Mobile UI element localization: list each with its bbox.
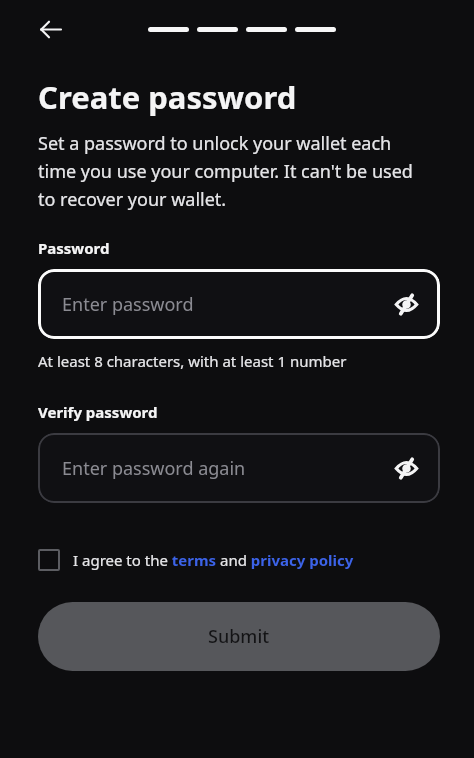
staticText: I agree to the terms and privacy policy (73, 550, 354, 570)
staticText: Verify password (38, 402, 158, 422)
button[interactable]: Show password (386, 284, 426, 324)
button[interactable]: Submit (38, 602, 440, 671)
button[interactable]: Show password (386, 448, 426, 488)
staticText: Submit (208, 624, 270, 649)
button[interactable]: Enter password (38, 269, 440, 339)
staticText: Enter password again (62, 456, 246, 481)
staticText: Set a password to unlock your wallet eac… (38, 131, 428, 211)
button[interactable]: Enter password again (38, 433, 440, 503)
staticText: Create password (38, 76, 297, 118)
staticText: Password (38, 238, 110, 258)
button[interactable]: Back (26, 5, 74, 53)
button[interactable]: I agree to the terms and privacy policy (38, 549, 354, 571)
staticText: Enter password (62, 292, 194, 317)
staticText: At least 8 characters, with at least 1 n… (38, 351, 347, 371)
